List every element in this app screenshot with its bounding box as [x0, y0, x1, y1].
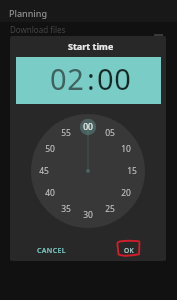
- staticText: 40: [45, 187, 55, 199]
- staticText: 55: [61, 127, 71, 139]
- staticText: 05: [105, 127, 115, 139]
- staticText: Planning: [9, 7, 48, 19]
- staticText: :: [87, 59, 95, 98]
- staticText: 10: [121, 143, 131, 155]
- staticText: Start time: [68, 40, 114, 52]
- staticText: Download files: [10, 24, 66, 35]
- staticText: 00: [97, 59, 132, 98]
- button[interactable]: CANCEL: [32, 242, 71, 260]
- button[interactable]: 02: [50, 59, 85, 98]
- button[interactable]: 00: [97, 59, 132, 98]
- staticText: 02: [50, 59, 85, 98]
- staticText: 35: [61, 203, 71, 215]
- staticText: CANCEL: [37, 246, 66, 256]
- staticText: 20: [121, 187, 131, 199]
- staticText: 00: [83, 121, 93, 133]
- staticText: 15: [127, 165, 137, 177]
- button[interactable]: OK: [119, 242, 139, 259]
- staticText: 50: [45, 143, 55, 155]
- staticText: OK: [124, 246, 134, 255]
- staticText: 30: [83, 209, 93, 221]
- staticText: 45: [39, 165, 49, 177]
- staticText: 25: [105, 203, 115, 215]
